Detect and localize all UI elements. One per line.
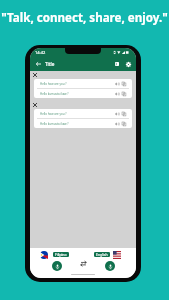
- button[interactable]: Copy: [121, 91, 127, 97]
- button[interactable]: English: [94, 252, 110, 257]
- button[interactable]: Speak: [114, 81, 120, 87]
- button[interactable]: Microphone: [105, 261, 115, 271]
- button[interactable]: Speak: [114, 91, 120, 97]
- button[interactable]: Microphone: [52, 261, 62, 271]
- staticText: Title: [45, 61, 55, 67]
- staticText: Hello how are you ?: [40, 82, 67, 86]
- button[interactable]: Swap languages: [79, 259, 88, 268]
- staticText: Hello how are you ?: [40, 112, 67, 116]
- button[interactable]: Close: [31, 101, 39, 109]
- button[interactable]: History: [112, 59, 122, 69]
- staticText: Hello kumusta ikaw ?: [40, 92, 69, 96]
- button[interactable]: Copy: [121, 111, 127, 117]
- button[interactable]: Speak: [114, 111, 120, 117]
- button[interactable]: Copy: [121, 81, 127, 87]
- staticText: English: [96, 252, 108, 257]
- staticText: Filipino: [55, 252, 67, 257]
- staticText: 14:42: [35, 50, 46, 55]
- button[interactable]: Speak: [114, 121, 120, 127]
- button[interactable]: Settings: [123, 59, 133, 69]
- button[interactable]: Filipino: [53, 252, 69, 257]
- staticText: "Talk, connect, share, enjoy.": [0, 10, 169, 26]
- staticText: Hello kumusta ikaw ?: [40, 122, 69, 126]
- button[interactable]: Copy: [121, 121, 127, 127]
- button[interactable]: Close: [31, 71, 39, 79]
- button[interactable]: Back: [34, 60, 42, 68]
